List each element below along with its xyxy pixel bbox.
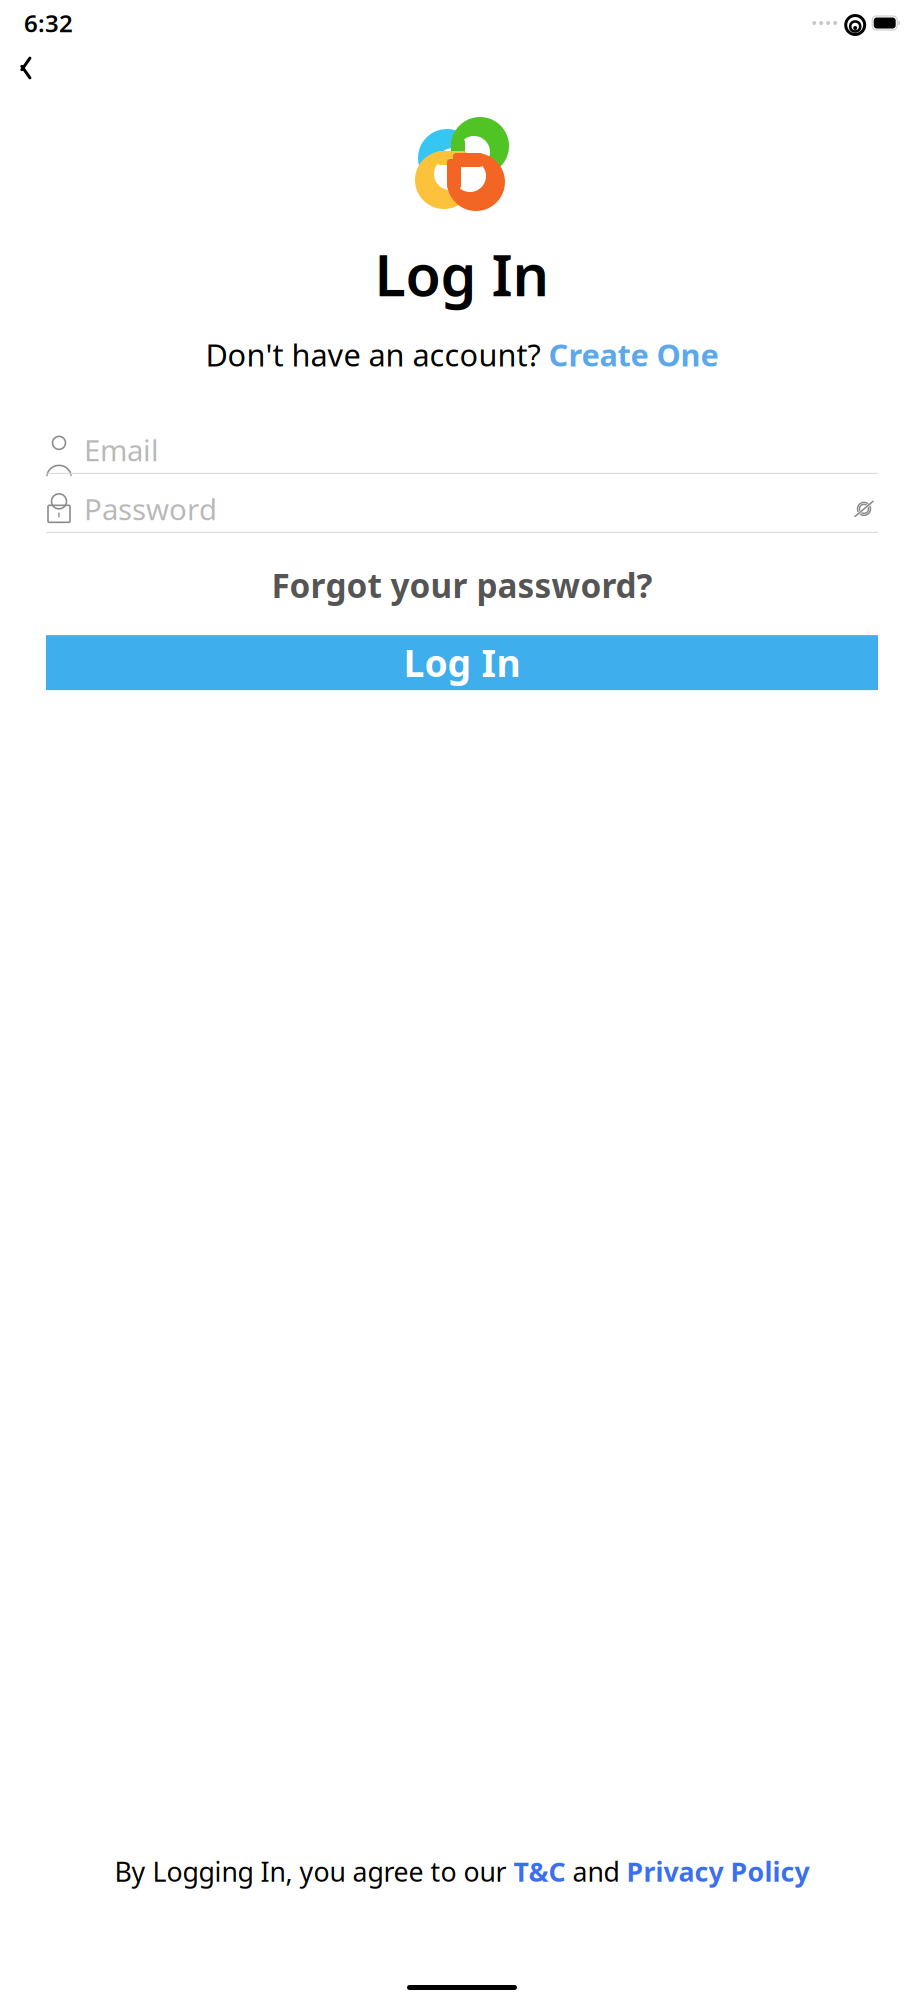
staticText: T&C xyxy=(513,1854,565,1889)
staticText: Create One xyxy=(548,334,718,375)
staticText: Forgot your password? xyxy=(271,563,652,607)
button[interactable]: Create One xyxy=(548,334,718,375)
staticText: Don't have an account? xyxy=(205,334,548,375)
button[interactable]: Forgot your password? xyxy=(259,557,664,613)
button[interactable]: Password xyxy=(0,486,924,533)
button[interactable]: T&C xyxy=(513,1854,565,1889)
staticText: and xyxy=(565,1854,626,1889)
staticText: By Logging In, you agree to our xyxy=(114,1854,513,1889)
button[interactable]: Log In xyxy=(46,635,878,690)
button[interactable]: Back xyxy=(4,44,50,92)
button[interactable]: Email xyxy=(0,427,924,474)
staticText: Password xyxy=(84,489,217,528)
button[interactable]: Privacy Policy xyxy=(626,1854,809,1889)
staticText: Email xyxy=(84,430,159,469)
staticText: Log In xyxy=(374,236,549,312)
staticText: Log In xyxy=(403,638,520,687)
staticText: Privacy Policy xyxy=(626,1854,809,1889)
staticText: 6:32 xyxy=(24,7,73,39)
